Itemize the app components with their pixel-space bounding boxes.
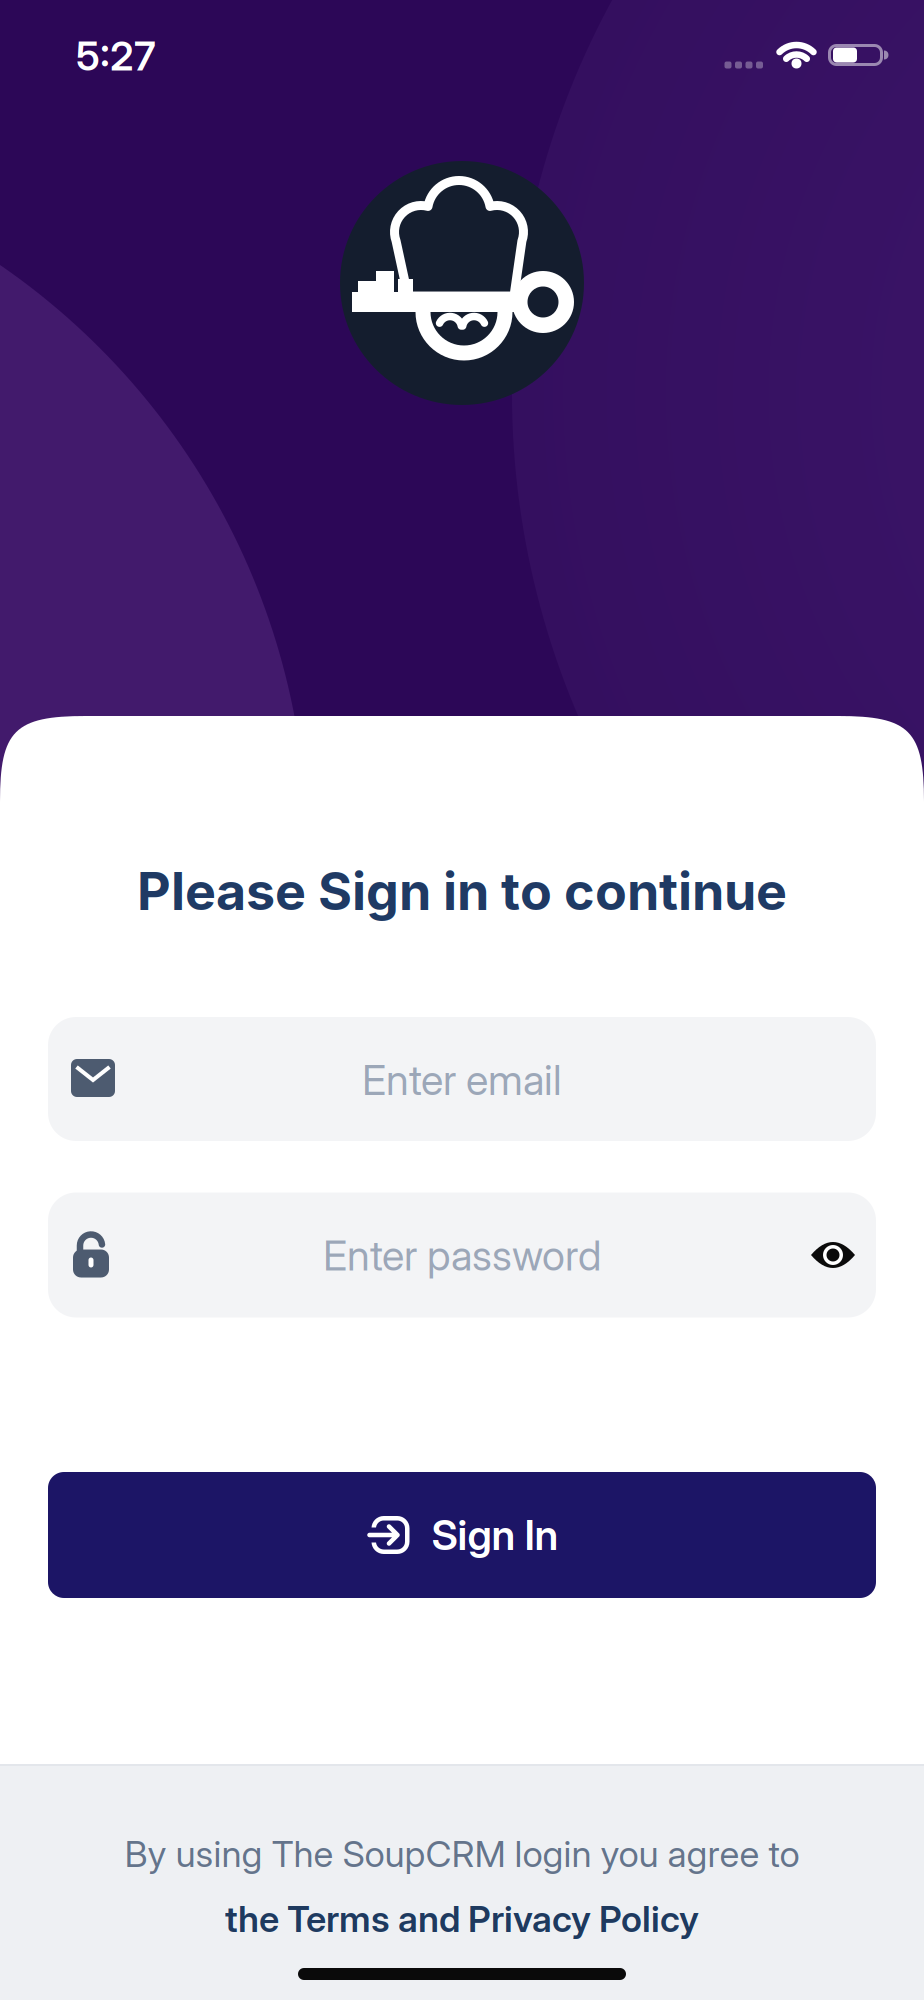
button[interactable]: the Terms and Privacy Policy <box>225 1898 699 1940</box>
staticText: Enter email <box>362 1056 562 1104</box>
staticText: Please Sign in to continue <box>137 860 787 922</box>
staticText: Enter password <box>323 1231 601 1280</box>
staticText: By using The SoupCRM login you agree to <box>124 1833 799 1875</box>
button[interactable]: Enter email <box>48 1017 876 1141</box>
button[interactable]: Sign In <box>48 1472 876 1598</box>
button[interactable]: Enter password <box>48 1192 876 1317</box>
staticText: the Terms and Privacy Policy <box>225 1898 699 1940</box>
button[interactable]: Show password <box>801 1227 865 1283</box>
staticText: 5:27 <box>76 32 156 80</box>
staticText: Sign In <box>431 1511 558 1559</box>
